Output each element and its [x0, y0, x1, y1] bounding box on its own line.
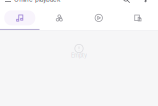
staticText: Offline playback: [14, 0, 60, 3]
button[interactable]: Artists: [39, 7, 79, 30]
button[interactable]: Files: [118, 7, 158, 30]
button[interactable]: Tracks: [0, 7, 39, 30]
button[interactable]: More options: [139, 0, 152, 3]
button[interactable]: Playing: [79, 7, 118, 30]
button[interactable]: Search: [117, 0, 136, 3]
staticText: Empty: [71, 52, 87, 59]
button[interactable]: Menu: [5, 0, 11, 2]
